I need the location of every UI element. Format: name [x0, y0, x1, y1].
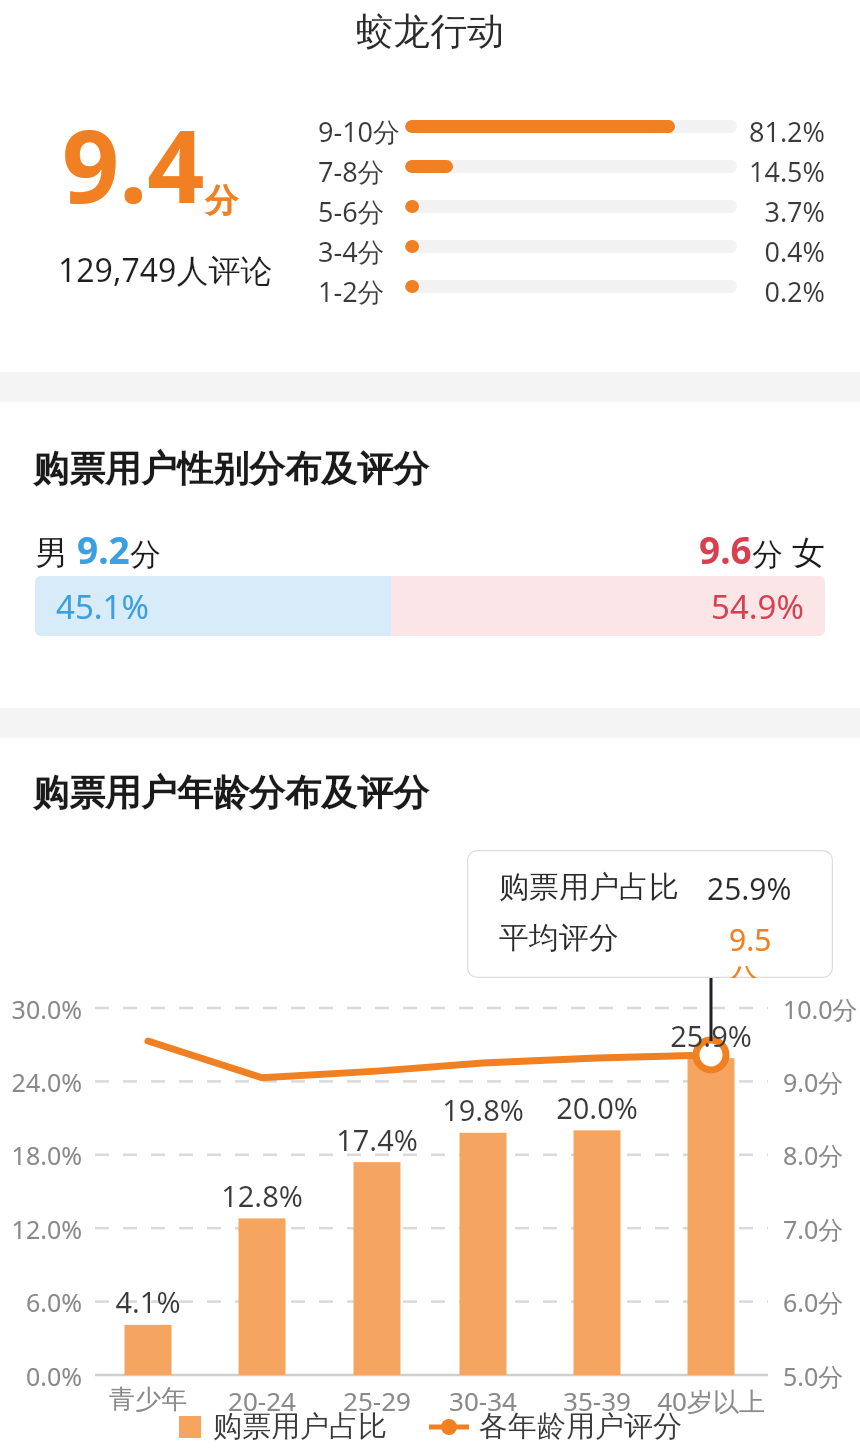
staticText: 4.1%: [88, 1282, 208, 1321]
staticText: 平均评分: [499, 919, 619, 957]
button[interactable]: 45.1%: [35, 576, 825, 636]
staticText: 青少年: [78, 1383, 218, 1416]
staticText: 分: [205, 180, 238, 222]
staticText: 9.5分: [729, 919, 799, 978]
staticText: 各年龄用户评分: [479, 1408, 682, 1445]
staticText: 20-24: [192, 1383, 332, 1418]
staticText: 9-10分: [318, 113, 401, 150]
staticText: 8.0分: [783, 1138, 844, 1172]
staticText: 19.8%: [423, 1090, 543, 1129]
staticText: 9.2: [77, 524, 130, 574]
staticText: 6.0%: [0, 1285, 82, 1319]
staticText: 5-6分: [318, 193, 385, 230]
staticText: 17.4%: [317, 1120, 437, 1159]
staticText: 18.0%: [0, 1138, 82, 1172]
staticText: 6.0分: [783, 1285, 844, 1319]
staticText: 14.5%: [700, 153, 825, 190]
staticText: 24.0%: [0, 1065, 82, 1099]
staticText: 7-8分: [318, 153, 385, 190]
staticText: 25-29: [307, 1383, 447, 1418]
staticText: 男: [35, 529, 77, 574]
staticText: 分: [130, 535, 161, 574]
staticText: 30.0%: [0, 992, 82, 1026]
staticText: 3.7%: [700, 193, 825, 230]
staticText: 40岁以上: [641, 1383, 781, 1419]
staticText: 25.9%: [707, 868, 792, 909]
staticText: 9.0分: [783, 1065, 844, 1099]
staticText: 10.0分: [783, 992, 858, 1026]
staticText: 129,749人评论: [58, 248, 273, 292]
staticText: 35-39: [527, 1383, 667, 1418]
staticText: 5.0分: [783, 1359, 844, 1393]
staticText: 0.4%: [700, 233, 825, 270]
staticText: 购票用户占比: [499, 868, 679, 906]
button[interactable]: 购票用户占比: [467, 850, 833, 978]
staticText: 54.9%: [711, 584, 804, 629]
staticText: 蛟龙行动: [0, 8, 860, 55]
staticText: 分: [752, 532, 792, 574]
staticText: 81.2%: [700, 113, 825, 150]
staticText: 购票用户年龄分布及评分: [33, 770, 429, 815]
staticText: 9.4: [62, 96, 205, 232]
staticText: 购票用户性别分布及评分: [33, 446, 429, 491]
staticText: 0.2%: [700, 273, 825, 310]
staticText: 45.1%: [56, 584, 149, 629]
staticText: 20.0%: [537, 1088, 657, 1127]
staticText: 9.6: [699, 524, 752, 574]
staticText: 7.0分: [783, 1212, 844, 1246]
staticText: 1-2分: [318, 273, 385, 310]
staticText: 女: [792, 532, 825, 574]
staticText: 购票用户占比: [213, 1408, 387, 1445]
staticText: 3-4分: [318, 233, 385, 270]
staticText: 25.9%: [651, 1016, 771, 1055]
staticText: 12.0%: [0, 1212, 82, 1246]
staticText: 30-34: [413, 1383, 553, 1418]
staticText: 0.0%: [0, 1359, 82, 1393]
staticText: 12.8%: [202, 1176, 322, 1215]
